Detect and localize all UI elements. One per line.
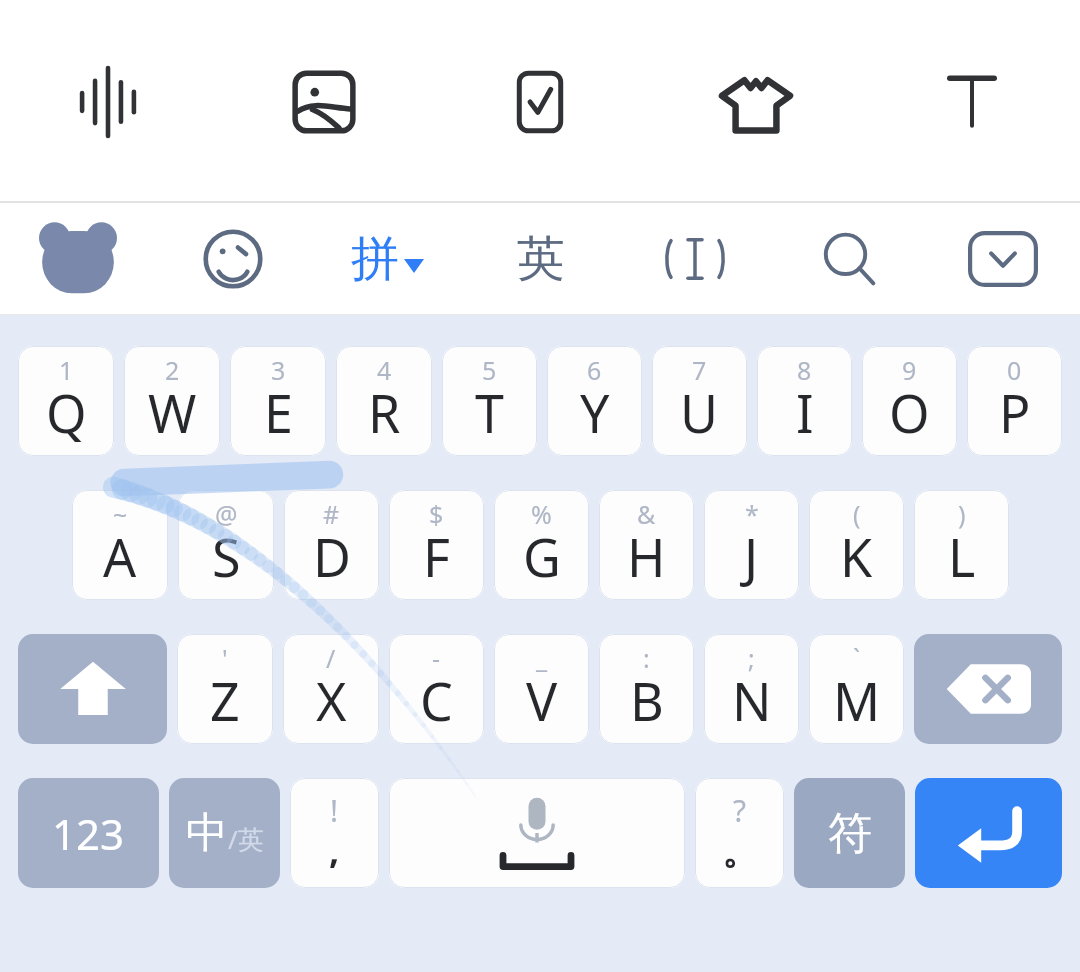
button[interactable]: Baidu menu (0, 203, 155, 315)
staticText: 符 (828, 806, 872, 861)
staticText: Y (580, 377, 610, 448)
staticText: O (889, 377, 930, 448)
button[interactable]: Todo (432, 0, 648, 203)
button[interactable]: 3 (230, 346, 326, 456)
staticText: N (732, 665, 772, 736)
staticText: * (745, 497, 759, 531)
button[interactable]: 1 (18, 346, 114, 456)
button[interactable]: ` (809, 634, 904, 744)
staticText: ; (748, 641, 755, 675)
staticText: ' (222, 641, 228, 675)
button[interactable]: - (389, 634, 484, 744)
button[interactable]: : (599, 634, 694, 744)
button[interactable]: ( (809, 490, 904, 600)
staticText: 1 (59, 353, 74, 387)
button[interactable]: Hide keyboard (926, 203, 1080, 315)
button[interactable]: Search (772, 203, 926, 315)
button[interactable]: $ (389, 490, 484, 600)
staticText: @ (215, 497, 238, 531)
staticText: P (999, 377, 1031, 448)
staticText: S (212, 521, 241, 592)
staticText: /英 (228, 821, 264, 857)
button[interactable]: 0 (967, 346, 1062, 456)
button[interactable]: 符 (794, 778, 905, 888)
button[interactable]: ; (704, 634, 799, 744)
staticText: U (680, 377, 719, 448)
button[interactable]: Space (389, 778, 685, 888)
staticText: J (744, 521, 759, 592)
button[interactable]: % (494, 490, 589, 600)
staticText: , (329, 825, 340, 874)
button[interactable]: 2 (124, 346, 220, 456)
staticText: # (323, 497, 340, 531)
button[interactable]: & (599, 490, 694, 600)
button[interactable]: Skin (648, 0, 864, 203)
staticText: T (475, 377, 504, 448)
staticText: ! (330, 790, 339, 831)
staticText: ? (733, 790, 747, 831)
staticText: : (643, 641, 650, 675)
staticText: Q (46, 377, 87, 448)
button[interactable]: 5 (442, 346, 537, 456)
staticText: D (313, 521, 351, 592)
staticText: 123 (52, 805, 125, 862)
staticText: / (326, 641, 336, 675)
staticText: 9 (902, 353, 917, 387)
button[interactable]: 4 (336, 346, 432, 456)
button[interactable]: 8 (757, 346, 852, 456)
button[interactable]: _ (494, 634, 589, 744)
button[interactable]: ~ (72, 490, 168, 600)
button[interactable]: Emoji (155, 203, 310, 315)
staticText: W (148, 377, 197, 448)
button[interactable]: Move cursor (618, 203, 772, 315)
staticText: ) (958, 497, 966, 531)
staticText: R (368, 377, 401, 448)
button[interactable]: Voice (0, 0, 216, 203)
staticText: % (531, 497, 552, 531)
button[interactable]: Photos (216, 0, 432, 203)
staticText: K (840, 521, 873, 592)
button[interactable]: 英 (464, 203, 618, 315)
staticText: G (523, 521, 561, 592)
button[interactable]: ' (177, 634, 273, 744)
staticText: Z (210, 665, 240, 736)
staticText: 拼 (351, 229, 399, 289)
staticText: 6 (587, 353, 602, 387)
staticText: C (420, 665, 453, 736)
staticText: 中 (186, 807, 228, 860)
button[interactable]: 9 (862, 346, 957, 456)
staticText: L (948, 521, 976, 592)
staticText: 2 (165, 353, 180, 387)
button[interactable]: Delete (914, 634, 1062, 744)
button[interactable]: 7 (652, 346, 747, 456)
staticText: V (526, 665, 558, 736)
staticText: H (627, 521, 666, 592)
button[interactable]: 中 (169, 778, 280, 888)
staticText: 0 (1007, 353, 1022, 387)
staticText: 7 (692, 353, 707, 387)
staticText: & (637, 497, 656, 531)
staticText: - (432, 641, 441, 675)
staticText: M (833, 665, 881, 736)
staticText: _ (536, 641, 548, 675)
staticText: 4 (377, 353, 392, 387)
button[interactable]: Text (864, 0, 1080, 203)
button[interactable]: @ (178, 490, 274, 600)
button[interactable]: Enter (915, 778, 1062, 888)
staticText: ( (853, 497, 861, 531)
button[interactable]: Shift (18, 634, 167, 744)
button[interactable]: ? (695, 778, 784, 888)
staticText: 英 (517, 229, 565, 289)
button[interactable]: 123 (18, 778, 159, 888)
staticText: 3 (271, 353, 286, 387)
button[interactable]: ! (290, 778, 379, 888)
button[interactable]: # (284, 490, 379, 600)
button[interactable]: / (283, 634, 379, 744)
staticText: E (264, 377, 293, 448)
button[interactable]: ) (914, 490, 1009, 600)
staticText: 8 (797, 353, 812, 387)
button[interactable]: 拼 (310, 203, 464, 315)
staticText: 。 (722, 829, 758, 874)
button[interactable]: * (704, 490, 799, 600)
button[interactable]: 6 (547, 346, 642, 456)
